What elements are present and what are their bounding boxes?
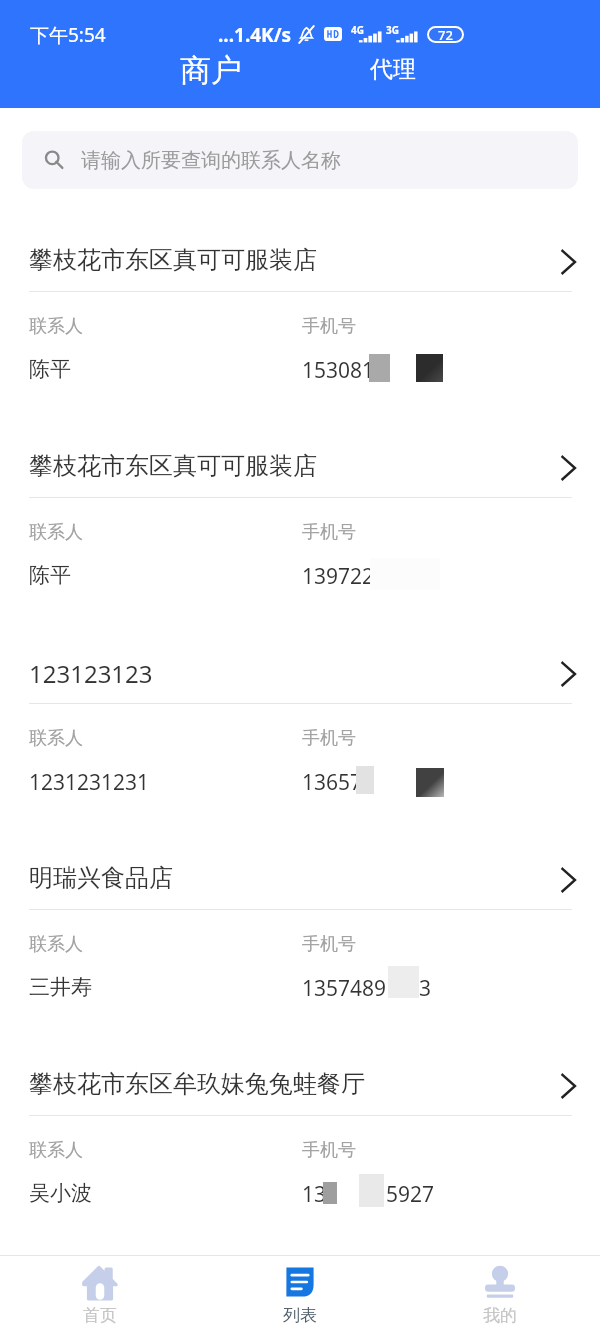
button[interactable]: 123123123 bbox=[0, 636, 600, 842]
staticText: 我的 bbox=[483, 1305, 517, 1326]
staticText: 联系人 bbox=[29, 1139, 302, 1162]
staticText: 1231231231 bbox=[29, 768, 150, 797]
button[interactable]: 查看详情 bbox=[549, 239, 591, 285]
staticText: 72 bbox=[438, 26, 453, 43]
staticText: 联系人 bbox=[29, 521, 302, 544]
staticText: 3 bbox=[419, 974, 432, 1003]
staticText: 手机号 bbox=[302, 521, 356, 544]
button[interactable]: 商户 bbox=[168, 47, 254, 94]
button[interactable]: 明瑞兴食品店 bbox=[0, 842, 600, 1048]
staticText: 135 bbox=[302, 1180, 339, 1209]
button[interactable]: 查看详情 bbox=[549, 1063, 591, 1109]
staticText: 手机号 bbox=[302, 315, 356, 338]
staticText: 列表 bbox=[283, 1305, 317, 1326]
staticText: 联系人 bbox=[29, 727, 302, 750]
staticText: 吴小波 bbox=[29, 1180, 92, 1206]
staticText: 三井寿 bbox=[29, 974, 92, 1000]
button[interactable]: 首页 bbox=[0, 1263, 200, 1326]
button[interactable]: 攀枝花市东区真可可服装店 bbox=[0, 224, 600, 430]
staticText: 攀枝花市东区真可可服装店 bbox=[29, 245, 317, 275]
button[interactable]: 请输入所要查询的联系人名称 bbox=[22, 131, 578, 189]
button[interactable]: 列表 bbox=[200, 1263, 400, 1326]
staticText: 攀枝花市东区真可可服装店 bbox=[29, 451, 317, 481]
staticText: 3G bbox=[386, 23, 399, 37]
staticText: 手机号 bbox=[302, 727, 356, 750]
staticText: 商户 bbox=[180, 51, 242, 90]
staticText: 请输入所要查询的联系人名称 bbox=[81, 148, 341, 173]
staticText: 代理 bbox=[370, 55, 416, 84]
staticText: 手机号 bbox=[302, 933, 356, 956]
button[interactable]: 攀枝花市东区真可可服装店 bbox=[0, 430, 600, 636]
staticText: 13657 bbox=[302, 768, 363, 797]
staticText: 联系人 bbox=[29, 933, 302, 956]
button[interactable]: 查看详情 bbox=[549, 651, 591, 697]
staticText: 123123123 bbox=[29, 657, 153, 690]
staticText: 陈平 bbox=[29, 562, 71, 588]
staticText: 1357489 bbox=[302, 974, 387, 1003]
button[interactable]: 我的 bbox=[400, 1263, 600, 1326]
staticText: 4G bbox=[351, 23, 364, 37]
button[interactable]: 查看详情 bbox=[549, 857, 591, 903]
staticText: 5927 bbox=[386, 1180, 435, 1209]
button[interactable]: 查看详情 bbox=[549, 445, 591, 491]
staticText: 攀枝花市东区牟玖妹兔兔蛙餐厅 bbox=[29, 1069, 365, 1099]
staticText: 1397220 bbox=[302, 562, 387, 591]
staticText: 153081 bbox=[302, 356, 375, 385]
staticText: ...1.4K/s bbox=[218, 22, 292, 48]
staticText: 下午5:54 bbox=[30, 22, 106, 48]
staticText: 首页 bbox=[83, 1305, 117, 1326]
button[interactable]: 代理 bbox=[358, 51, 428, 88]
staticText: 陈平 bbox=[29, 356, 71, 382]
staticText: 联系人 bbox=[29, 315, 302, 338]
button[interactable]: 攀枝花市东区牟玖妹兔兔蛙餐厅 bbox=[0, 1048, 600, 1254]
staticText: 手机号 bbox=[302, 1139, 356, 1162]
staticText: 明瑞兴食品店 bbox=[29, 863, 173, 893]
